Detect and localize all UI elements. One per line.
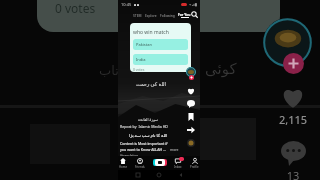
button[interactable]: Search: [191, 11, 198, 18]
button[interactable]: Friends: [135, 158, 145, 169]
staticText: ⌁⊿▮: [189, 2, 197, 7]
staticText: Profile: [190, 165, 199, 169]
button[interactable]: Save: [187, 113, 195, 121]
staticText: Pakistan: [136, 42, 152, 47]
staticText: you want to Know ALLAH ...: [120, 147, 167, 152]
button[interactable]: Back: [179, 173, 183, 177]
staticText: Content is Most important if: [120, 141, 168, 146]
button[interactable]: #translation: [120, 154, 139, 158]
button[interactable]: Profile: [263, 18, 312, 67]
button[interactable]: more: [170, 147, 179, 152]
button[interactable]: Following: [160, 13, 175, 17]
staticText: 2,115: [275, 112, 311, 127]
button[interactable]: Follow: [283, 53, 304, 74]
button[interactable]: Profile: [190, 158, 199, 169]
staticText: اللہ کی رحمت: [136, 81, 166, 88]
staticText: تاب: [99, 63, 119, 78]
button[interactable]: Like: [187, 87, 195, 95]
staticText: 0 votes: [133, 67, 145, 72]
button[interactable]: Home: [119, 158, 127, 169]
staticText: 13: [277, 168, 309, 180]
button[interactable]: For You: [178, 12, 191, 18]
staticText: Following: [160, 13, 175, 17]
staticText: Inbox: [174, 165, 182, 169]
staticText: کوئی: [205, 60, 237, 77]
button[interactable]: Like: [281, 85, 305, 109]
button[interactable]: Pakistan: [133, 39, 188, 50]
button[interactable]: Comment: [187, 100, 195, 108]
button[interactable]: Share: [187, 126, 195, 134]
staticText: Repost by Islamic Media HD: [120, 124, 168, 129]
staticText: Explore: [145, 13, 157, 17]
staticText: اللہ کا نام سب سے بڑا: [129, 133, 168, 139]
staticText: Friends: [135, 165, 145, 169]
button[interactable]: Comments: [281, 141, 306, 166]
button[interactable]: Home: [157, 173, 161, 177]
staticText: سورۃ الفاتحہ: [120, 117, 176, 122]
button[interactable]: Explore: [145, 13, 157, 17]
button[interactable]: India: [133, 54, 188, 65]
staticText: India: [136, 57, 146, 62]
staticText: 10:45: [121, 2, 132, 7]
button[interactable]: STEM: [133, 13, 142, 17]
button[interactable]: Inbox: [174, 158, 182, 169]
staticText: Home: [119, 165, 127, 169]
button[interactable]: Follow: [189, 75, 194, 80]
button[interactable]: Recents: [136, 173, 140, 177]
button[interactable]: Create: [153, 158, 166, 166]
staticText: who win match: [133, 29, 169, 36]
staticText: 0 votes: [55, 0, 96, 16]
staticText: STEM: [133, 13, 142, 17]
staticText: For You: [178, 12, 191, 16]
